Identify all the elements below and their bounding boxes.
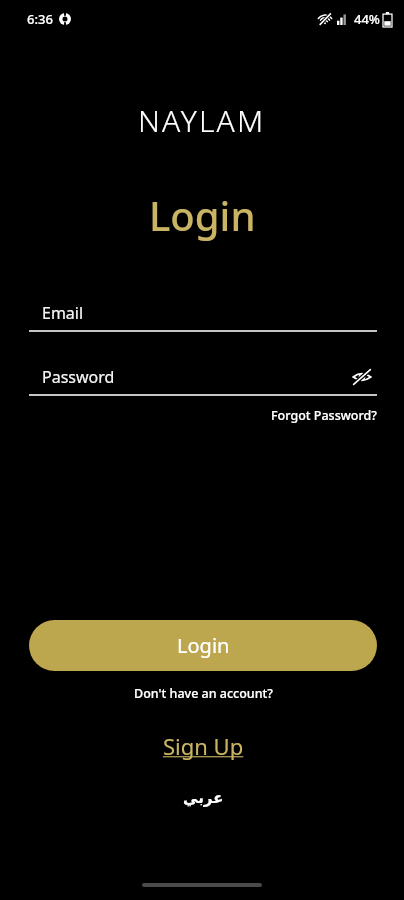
staticText: Don't have an account? bbox=[134, 685, 273, 702]
staticText: Forgot Password? bbox=[271, 407, 377, 424]
button[interactable]: Forgot Password? bbox=[271, 407, 377, 424]
button[interactable]: Login bbox=[29, 620, 377, 671]
button[interactable]: Sign Up bbox=[163, 731, 244, 761]
staticText: Email bbox=[42, 302, 84, 324]
staticText: Sign Up bbox=[163, 731, 244, 761]
button[interactable]: Password bbox=[29, 360, 377, 396]
staticText: NAYLAM bbox=[138, 100, 266, 141]
staticText: عربي bbox=[183, 789, 224, 806]
staticText: Password bbox=[42, 366, 115, 388]
button[interactable]: عربي bbox=[183, 789, 224, 806]
staticText: 6:36 bbox=[27, 10, 53, 28]
staticText: 44% bbox=[354, 10, 380, 28]
button[interactable]: Email bbox=[29, 296, 377, 332]
staticText: Login bbox=[149, 188, 256, 242]
staticText: Login bbox=[177, 632, 230, 659]
button[interactable]: Show password bbox=[347, 362, 377, 392]
